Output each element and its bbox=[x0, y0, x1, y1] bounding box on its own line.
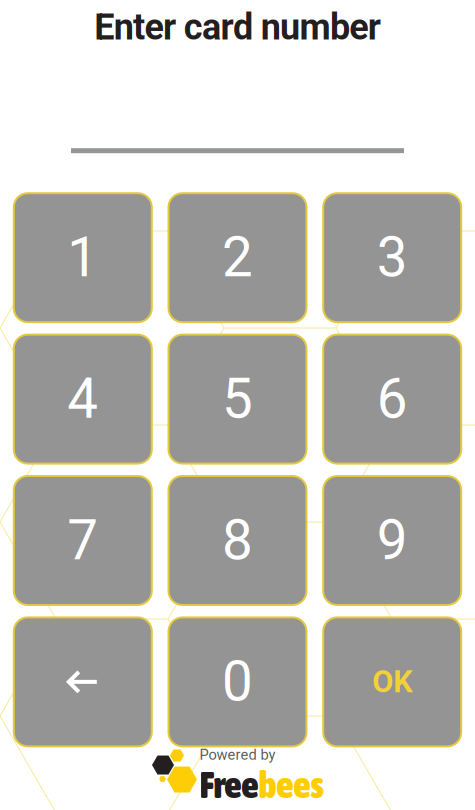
button[interactable]: 5 bbox=[168, 335, 306, 464]
staticText: 0 bbox=[222, 650, 253, 714]
button[interactable]: Delete bbox=[14, 617, 152, 746]
staticText: 5 bbox=[222, 367, 253, 431]
button[interactable]: 1 bbox=[14, 193, 152, 322]
button[interactable]: OK bbox=[323, 617, 461, 746]
button[interactable]: 3 bbox=[323, 193, 461, 322]
button[interactable]: 8 bbox=[168, 476, 306, 605]
staticText: 4 bbox=[67, 367, 98, 431]
button[interactable]: 4 bbox=[14, 335, 152, 464]
staticText: bees bbox=[258, 763, 323, 806]
staticText: Free bbox=[199, 763, 258, 806]
staticText: 6 bbox=[377, 367, 408, 431]
staticText: Enter card number bbox=[94, 6, 381, 48]
staticText: OK bbox=[372, 664, 412, 700]
button[interactable]: 0 bbox=[168, 617, 306, 746]
button[interactable]: 6 bbox=[323, 335, 461, 464]
staticText: 2 bbox=[222, 226, 253, 290]
button[interactable]: 2 bbox=[168, 193, 306, 322]
staticText: 8 bbox=[222, 508, 253, 573]
staticText: 1 bbox=[67, 226, 98, 290]
staticText: 7 bbox=[67, 508, 98, 573]
button[interactable]: 9 bbox=[323, 476, 461, 605]
staticText: Powered by bbox=[199, 746, 275, 763]
staticText: 3 bbox=[377, 226, 408, 290]
staticText: 9 bbox=[377, 508, 408, 573]
button[interactable]: 7 bbox=[14, 476, 152, 605]
